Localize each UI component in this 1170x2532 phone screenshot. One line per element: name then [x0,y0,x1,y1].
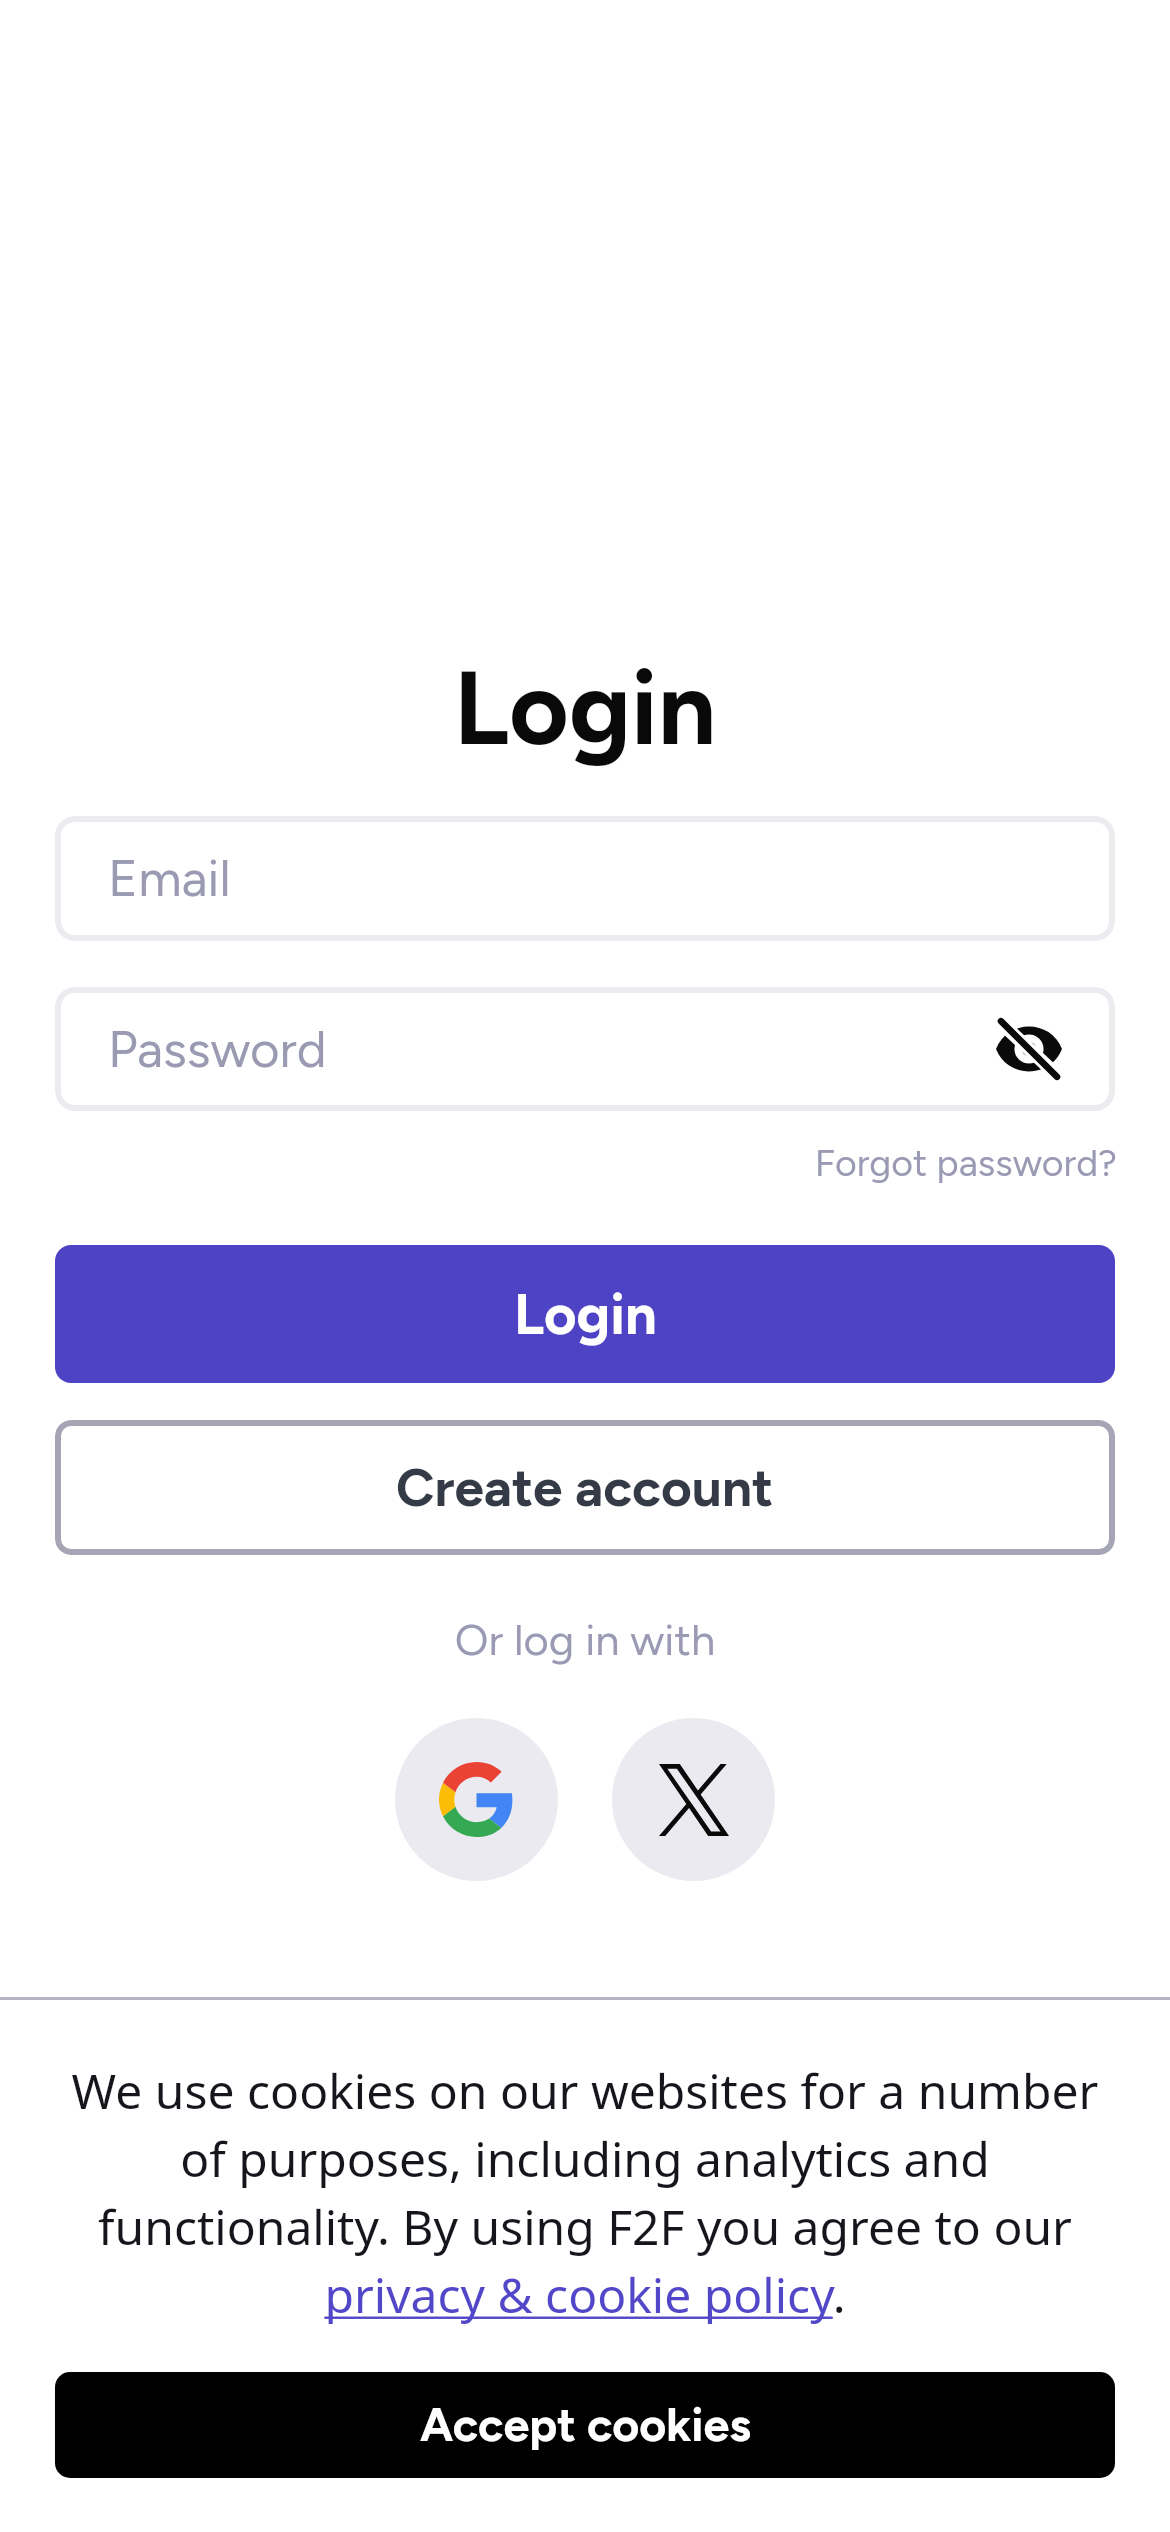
button[interactable]: Sign in with X [612,1718,775,1881]
staticText: Email [108,848,231,909]
button[interactable]: Accept cookies [55,2372,1115,2478]
button[interactable]: Email [55,816,1115,941]
staticText: Create account [396,1456,774,1520]
staticText: Login [514,1281,657,1348]
staticText: We use cookies on our websites for a num… [50,2058,1120,2327]
staticText: Accept cookies [420,2397,751,2453]
staticText: Login [0,646,1170,770]
button[interactable]: Password [55,987,1115,1111]
staticText: Password [108,1019,327,1080]
button[interactable]: Sign in with Google [395,1718,558,1881]
staticText: Or log in with [0,1614,1170,1666]
button[interactable]: Show password [981,1001,1077,1097]
button[interactable]: Create account [55,1420,1115,1555]
button[interactable]: Login [55,1245,1115,1383]
button[interactable]: Forgot password? [0,1140,1117,1185]
